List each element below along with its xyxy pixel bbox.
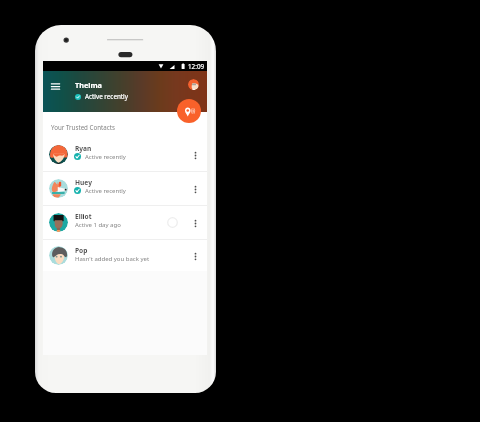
- button[interactable]: Share your location: [177, 99, 201, 123]
- staticText: Active recently: [85, 153, 126, 161]
- staticText: Thelma: [75, 80, 102, 90]
- button[interactable]: Open navigation drawer: [46, 77, 65, 96]
- button[interactable]: More options: [189, 178, 201, 200]
- staticText: Ryan: [75, 144, 92, 153]
- button[interactable]: Your profile: [188, 79, 199, 90]
- staticText: Huey: [75, 178, 92, 187]
- button[interactable]: More options: [189, 144, 201, 166]
- button[interactable]: More options: [189, 212, 201, 234]
- staticText: Your Trusted Contacts: [51, 123, 115, 131]
- button[interactable]: More options: [189, 245, 201, 267]
- staticText: Active recently: [85, 92, 128, 101]
- button[interactable]: Pop: [43, 240, 207, 271]
- staticText: Active recently: [85, 187, 126, 195]
- staticText: Hasn't added you back yet: [75, 255, 150, 263]
- button[interactable]: Ryan: [43, 138, 207, 171]
- staticText: Pop: [75, 246, 88, 255]
- staticText: 12:09: [188, 62, 205, 71]
- staticText: Active 1 day ago: [75, 221, 121, 229]
- button[interactable]: Huey: [43, 172, 207, 205]
- button[interactable]: Elliot: [43, 206, 207, 239]
- staticText: Elliot: [75, 212, 92, 221]
